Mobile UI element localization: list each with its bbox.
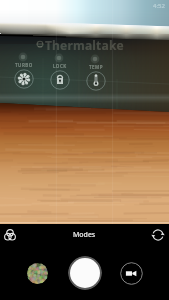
staticText: TURBO	[15, 62, 33, 68]
staticText: Modes	[73, 230, 96, 240]
button[interactable]: Gallery	[27, 263, 48, 284]
button[interactable]: Take photo	[68, 256, 102, 290]
staticText: LOCK	[53, 63, 67, 69]
button[interactable]: Color filters	[2, 227, 18, 243]
staticText: 4:52	[153, 2, 165, 10]
staticText: Thermaltake	[45, 37, 124, 53]
button[interactable]: Video mode	[120, 262, 143, 285]
button[interactable]: Switch camera	[150, 227, 166, 243]
staticText: TEMP	[89, 64, 104, 70]
